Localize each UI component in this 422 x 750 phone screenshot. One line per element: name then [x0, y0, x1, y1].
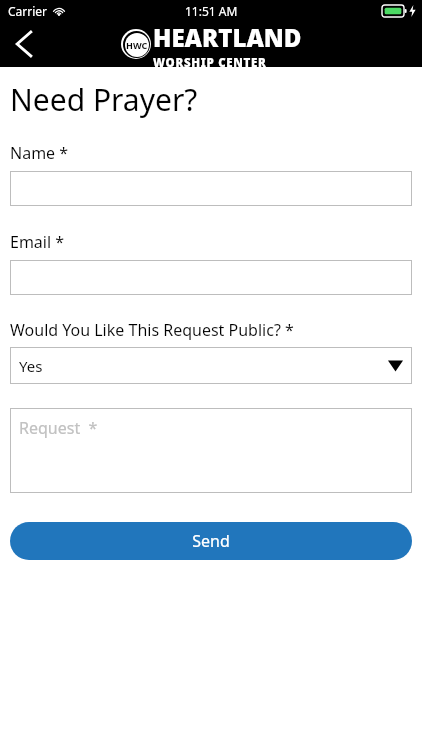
button[interactable]: Request * [10, 408, 412, 493]
staticText: Send [192, 530, 230, 552]
staticText: Carrier [8, 3, 48, 19]
staticText: 11:51 AM [185, 3, 238, 19]
staticText: HWC [126, 39, 148, 51]
staticText: Yes [19, 356, 43, 376]
button[interactable]: Back [4, 24, 44, 64]
staticText: Request * [19, 417, 98, 439]
button[interactable]: Send [10, 522, 412, 560]
staticText: WORSHIP CENTER [153, 55, 267, 67]
staticText: Name * [10, 142, 69, 164]
staticText: Would You Like This Request Public? * [10, 319, 294, 341]
staticText: Need Prayer? [10, 79, 198, 120]
button[interactable] [10, 260, 412, 295]
staticText: HEARTLAND [153, 21, 302, 54]
button[interactable]: Yes [10, 347, 412, 384]
staticText: Email * [10, 231, 65, 253]
button[interactable] [10, 171, 412, 206]
